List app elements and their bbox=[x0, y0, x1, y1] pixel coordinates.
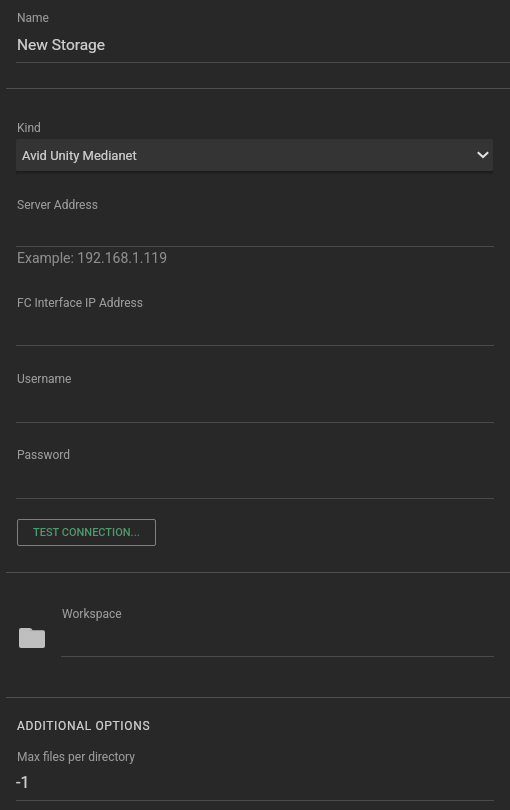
staticText: Name bbox=[17, 11, 49, 25]
button[interactable] bbox=[0, 442, 510, 500]
staticText: Server Address bbox=[17, 198, 98, 212]
staticText: ADDITIONAL OPTIONS bbox=[17, 719, 151, 733]
staticText: New Storage bbox=[17, 36, 106, 54]
staticText: Avid Unity Medianet bbox=[22, 148, 137, 163]
button[interactable] bbox=[0, 192, 510, 248]
staticText: FC Interface IP Address bbox=[17, 296, 143, 310]
staticText: TEST CONNECTION... bbox=[33, 526, 140, 539]
button[interactable] bbox=[0, 744, 510, 806]
button[interactable] bbox=[0, 600, 510, 662]
staticText: Example: 192.168.1.119 bbox=[17, 250, 168, 266]
staticText: Kind bbox=[17, 121, 41, 135]
button[interactable]: TEST CONNECTION... bbox=[17, 519, 156, 546]
button[interactable] bbox=[0, 4, 510, 70]
button[interactable]: Browse workspace folder bbox=[19, 628, 45, 648]
staticText: -1 bbox=[16, 773, 30, 792]
button[interactable]: Avid Unity Medianet bbox=[16, 139, 493, 171]
staticText: Max files per directory bbox=[17, 750, 135, 764]
staticText: Password bbox=[17, 448, 71, 462]
button[interactable] bbox=[0, 366, 510, 424]
staticText: Workspace bbox=[62, 607, 122, 621]
staticText: Username bbox=[17, 372, 72, 386]
other: Expand kind options bbox=[477, 151, 489, 159]
button[interactable] bbox=[0, 290, 510, 347]
